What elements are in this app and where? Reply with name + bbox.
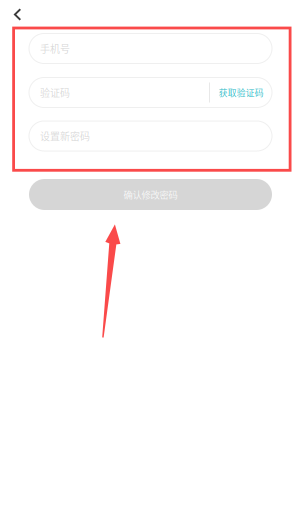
staticText: 确认修改密码 xyxy=(123,188,177,201)
button[interactable]: 获取验证码 xyxy=(211,77,271,107)
staticText: 设置新密码 xyxy=(40,129,90,143)
staticText: 验证码 xyxy=(40,85,70,100)
staticText: 获取验证码 xyxy=(219,86,264,99)
staticText: 手机号 xyxy=(40,41,70,56)
button[interactable]: 确认修改密码 xyxy=(29,179,272,210)
button[interactable]: Back xyxy=(0,0,40,28)
